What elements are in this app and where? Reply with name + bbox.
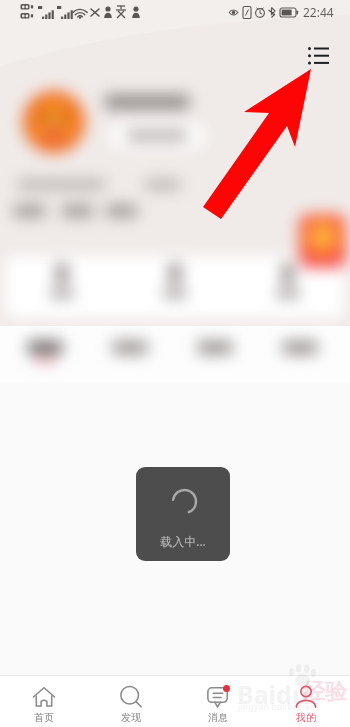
staticText: 22:44: [303, 4, 334, 20]
staticText: Baidu: [237, 677, 309, 711]
button[interactable]: 首页: [0, 680, 87, 724]
button[interactable]: Menu: [299, 36, 337, 74]
staticText: 发现: [121, 711, 141, 724]
staticText: 经验: [303, 678, 347, 706]
staticText: 首页: [34, 711, 54, 724]
staticText: 消息: [208, 711, 228, 724]
button[interactable]: 我的: [262, 680, 350, 724]
button[interactable]: 消息: [174, 680, 262, 724]
staticText: jingyan.baidu.com: [238, 700, 316, 712]
button[interactable]: 发现: [87, 680, 174, 724]
staticText: 载入中...: [136, 533, 230, 549]
staticText: 我的: [296, 711, 316, 724]
